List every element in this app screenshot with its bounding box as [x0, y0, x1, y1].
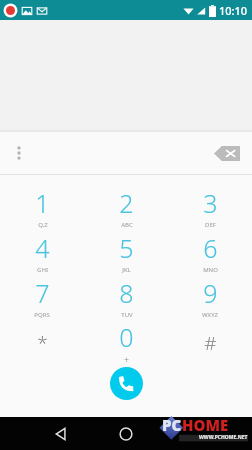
button[interactable]: 5 [84, 230, 168, 275]
button[interactable]: More options [6, 140, 32, 166]
staticText: JKL [122, 266, 131, 274]
staticText: 9 [203, 276, 218, 310]
button[interactable]: Backspace [210, 140, 244, 166]
staticText: WXYZ [202, 311, 218, 319]
staticText: ABC [121, 221, 133, 229]
staticText: 10:10 [219, 3, 248, 18]
button[interactable]: Call [110, 367, 143, 400]
staticText: * [37, 330, 48, 356]
staticText: 8 [119, 276, 134, 310]
staticText: 7 [35, 276, 50, 310]
button[interactable]: 0 [84, 320, 168, 365]
button[interactable]: 2 [84, 185, 168, 230]
button[interactable]: Back [48, 421, 74, 447]
staticText: Q,Z [38, 221, 48, 229]
button[interactable]: 7 [0, 275, 84, 320]
button[interactable]: 9 [168, 275, 252, 320]
button[interactable]: Recent apps [186, 421, 212, 447]
button[interactable]: 3 [168, 185, 252, 230]
button[interactable]: 8 [84, 275, 168, 320]
staticText: 1 [35, 186, 50, 220]
staticText: WWW.PCHOME.NET [199, 434, 248, 441]
staticText: TUV [121, 311, 133, 319]
staticText: 2 [119, 186, 134, 220]
staticText: GHI [37, 266, 48, 274]
staticText: 4 [35, 231, 50, 265]
button[interactable]: 1 [0, 185, 84, 230]
staticText: PC [162, 415, 182, 435]
button[interactable]: 4 [0, 230, 84, 275]
staticText: 5 [119, 231, 134, 265]
staticText: + [124, 354, 129, 365]
staticText: HOME [182, 415, 229, 435]
button[interactable]: 6 [168, 230, 252, 275]
staticText: 0 [119, 320, 134, 354]
staticText: # [204, 330, 217, 356]
staticText: DEF [205, 221, 216, 229]
button[interactable]: # [168, 320, 252, 365]
staticText: PQRS [34, 311, 50, 319]
staticText: 6 [203, 231, 218, 265]
button[interactable]: Home [113, 421, 139, 447]
staticText: MNO [203, 266, 218, 274]
button[interactable]: * [0, 320, 84, 365]
staticText: 3 [203, 186, 218, 220]
